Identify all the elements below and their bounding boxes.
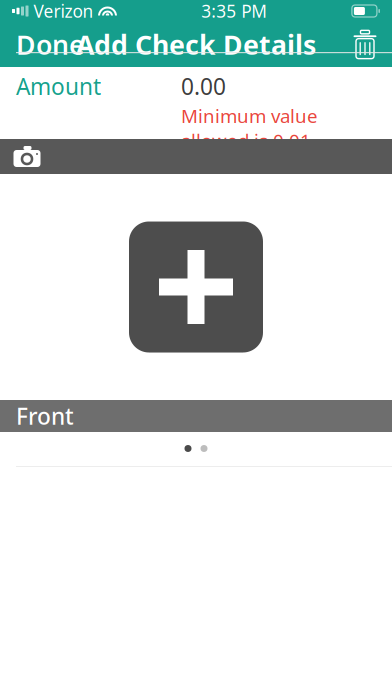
staticText: Minimum value allowed is 0.01 xyxy=(181,103,318,153)
button[interactable]: Delete xyxy=(338,22,392,67)
button[interactable]: Done xyxy=(0,22,101,67)
staticText: Verizon xyxy=(33,0,93,22)
staticText: Add Check Details xyxy=(76,27,316,62)
staticText: Front xyxy=(16,401,74,431)
button[interactable]: Add check image xyxy=(129,221,263,352)
staticText: Done xyxy=(16,27,85,62)
staticText: 0.00 xyxy=(181,71,226,101)
staticText: Amount xyxy=(16,71,101,101)
button[interactable]: Take photo xyxy=(0,139,51,174)
staticText: 3:35 PM xyxy=(201,0,267,22)
